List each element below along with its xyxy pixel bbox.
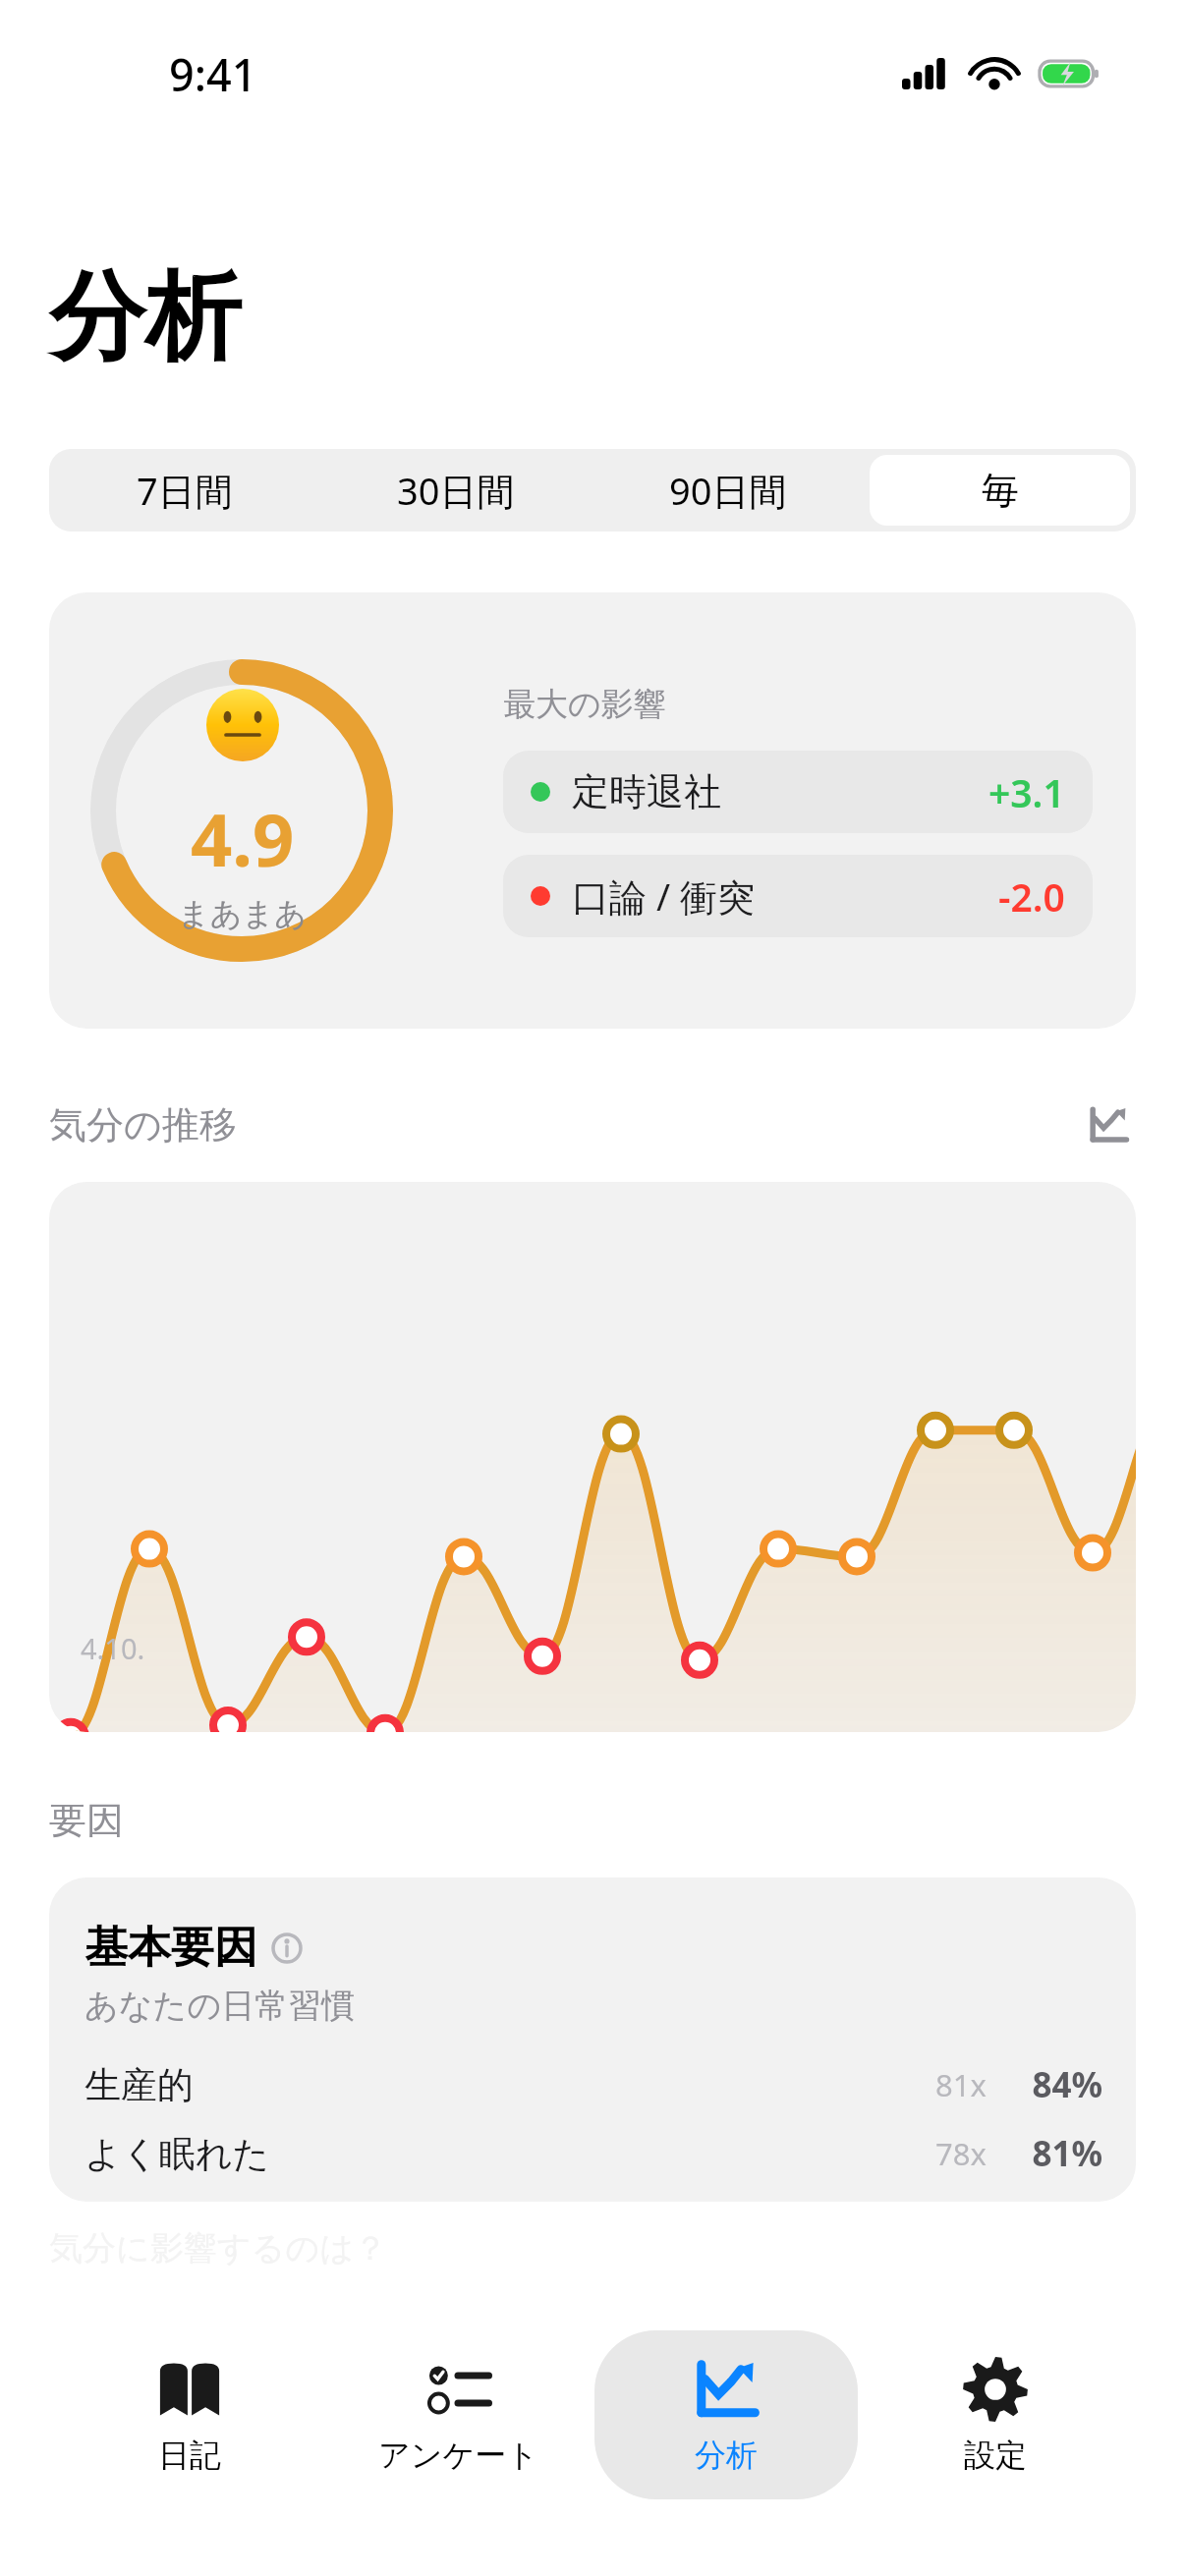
staticText: 30日間 xyxy=(397,465,515,516)
staticText: 要因 xyxy=(49,1797,124,1844)
staticText: 定時退社 xyxy=(572,768,721,815)
staticText: 日記 xyxy=(158,2436,221,2475)
staticText: 90日間 xyxy=(669,465,787,516)
staticText: 最大の影響 xyxy=(503,684,666,725)
staticText: 分析 xyxy=(695,2436,758,2475)
staticText: 気分の推移 xyxy=(49,1101,237,1148)
button[interactable]: 30日間 xyxy=(326,455,586,526)
button[interactable]: 7日間 xyxy=(55,455,314,526)
button[interactable]: 毎 xyxy=(870,455,1130,526)
button[interactable]: よく眠れた xyxy=(85,2121,1102,2186)
other: Info xyxy=(271,1932,303,1964)
staticText: 7日間 xyxy=(137,465,233,516)
staticText: アンケート xyxy=(378,2436,538,2475)
staticText: 84% xyxy=(1008,2061,1102,2108)
button[interactable]: アンケート xyxy=(326,2330,590,2499)
staticText: +3.1 xyxy=(988,766,1065,818)
other: Trend chart xyxy=(1087,1103,1130,1147)
staticText: 81% xyxy=(1008,2130,1102,2177)
staticText: 設定 xyxy=(964,2436,1027,2475)
staticText: 口論 / 衝突 xyxy=(572,870,755,922)
button[interactable]: 口論 / 衝突 xyxy=(503,855,1093,937)
staticText: 4.9 xyxy=(191,789,295,888)
staticText: まあまあ xyxy=(178,894,307,933)
staticText: よく眠れた xyxy=(85,2131,270,2177)
staticText: あなたの日常習慣 xyxy=(85,1985,356,2027)
staticText: 分析 xyxy=(49,257,242,378)
staticText: 78x xyxy=(935,2133,987,2174)
staticText: 気分に影響するのは？ xyxy=(49,2227,387,2269)
button[interactable]: 生産的 xyxy=(85,2052,1102,2117)
staticText: 9:41 xyxy=(169,44,257,104)
button[interactable]: 設定 xyxy=(864,2330,1127,2499)
staticText: 4.10. xyxy=(81,1629,145,1667)
button[interactable]: 90日間 xyxy=(597,455,858,526)
staticText: 毎 xyxy=(982,467,1019,514)
button[interactable]: 日記 xyxy=(58,2330,321,2499)
button[interactable]: 分析 xyxy=(594,2330,858,2499)
staticText: 生産的 xyxy=(85,2062,194,2108)
staticText: -2.0 xyxy=(998,870,1065,923)
button[interactable]: 定時退社 xyxy=(503,751,1093,833)
staticText: 基本要因 xyxy=(85,1921,257,1975)
staticText: 81x xyxy=(935,2064,987,2105)
